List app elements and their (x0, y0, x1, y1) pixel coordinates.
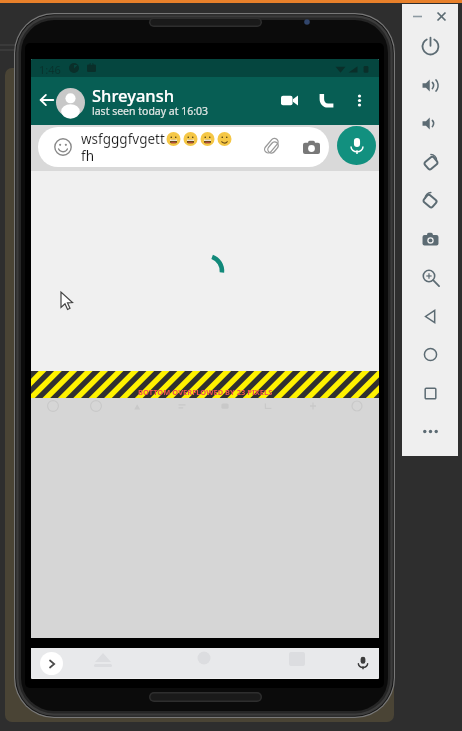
button[interactable]: Screenshot (402, 222, 458, 256)
button[interactable]: Back (40, 652, 63, 675)
button[interactable]: Voice message (337, 126, 376, 165)
button[interactable]: Power (402, 29, 458, 63)
button[interactable]: Zoom (402, 260, 458, 294)
button[interactable]: Back (402, 299, 458, 333)
button[interactable]: Volume down (402, 106, 458, 140)
button[interactable]: Camera (299, 135, 323, 159)
button[interactable]: Back (33, 86, 60, 113)
staticText: wsfgggfvgett (81, 130, 165, 148)
staticText: fh (81, 147, 94, 165)
button[interactable]: Video call (276, 87, 303, 114)
button[interactable]: More options (346, 87, 372, 113)
staticText: BOTTOM OVERFLOWED BY 23 PIXELS (138, 387, 273, 397)
staticText: 1:46 (39, 62, 61, 77)
button[interactable]: Call (313, 87, 340, 114)
button[interactable]: Voice input (353, 653, 373, 673)
button[interactable]: wsfgggfvgett (38, 127, 329, 167)
button[interactable]: Close (433, 8, 449, 24)
button[interactable]: Home (402, 337, 458, 371)
button[interactable]: Rotate right (402, 183, 458, 217)
button[interactable]: Overview (402, 376, 458, 410)
button[interactable]: More (402, 414, 458, 448)
button[interactable]: Minimize (409, 8, 425, 24)
staticText: last seen today at 16:03 (92, 104, 209, 118)
button[interactable]: Rotate left (402, 145, 458, 179)
staticText: Shreyansh (92, 84, 175, 106)
button[interactable]: Volume up (402, 68, 458, 102)
button[interactable]: Attach (261, 135, 285, 159)
